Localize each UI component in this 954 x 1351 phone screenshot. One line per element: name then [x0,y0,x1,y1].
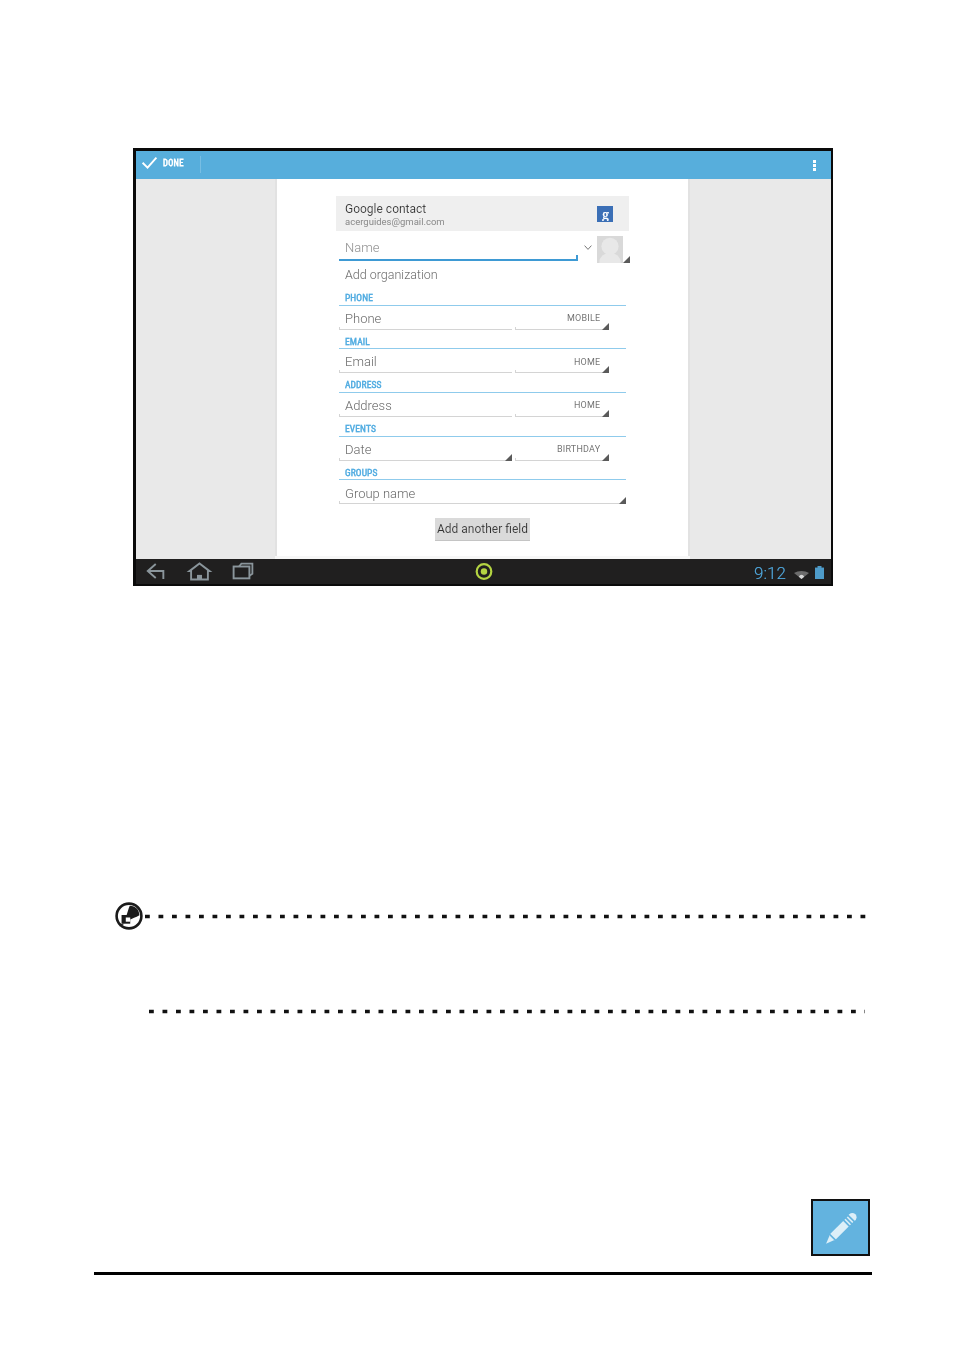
staticText: g [602,205,609,221]
staticText: GROUPS [345,467,378,478]
staticText: EVENTS [345,423,376,434]
staticText: EMAIL [345,336,370,347]
button[interactable] [339,439,512,460]
staticText: Email [345,354,377,369]
button[interactable] [339,308,512,329]
staticText: Date [345,442,372,457]
button[interactable]: Recent apps [228,559,258,583]
staticText: Address [345,398,392,413]
staticText: HOME [574,357,601,368]
staticText: Add another field [437,522,528,536]
staticText: Google contact [345,202,427,216]
staticText: MOBILE [567,313,601,324]
button[interactable]: More options [803,152,825,178]
other: Note [115,902,143,930]
button[interactable] [515,395,609,416]
staticText: DONE [163,158,184,168]
button[interactable] [515,308,609,329]
staticText: Phone [345,311,382,326]
staticText: 9:12 [754,563,786,579]
button[interactable] [339,483,626,504]
staticText: PHONE [345,292,373,303]
button[interactable] [339,352,512,373]
button[interactable] [339,395,512,416]
staticText: BIRTHDAY [557,444,601,455]
staticText: Name [345,240,380,255]
button[interactable] [515,439,609,460]
button[interactable] [515,352,609,373]
button[interactable]: Contact photo [597,236,623,263]
staticText: acerguides@gmail.com [345,216,445,227]
staticText: Add organization [345,267,438,282]
staticText: Group name [345,486,416,501]
button[interactable]: Back [141,559,171,583]
button[interactable]: Home [184,559,214,583]
button[interactable]: DONE [139,151,200,179]
staticText: HOME [574,400,601,411]
staticText: ADDRESS [345,379,382,390]
button[interactable]: Add another field [435,518,530,540]
button[interactable] [339,266,519,285]
button[interactable] [339,238,577,259]
button[interactable]: Edit [813,1201,868,1254]
button[interactable]: Google contact [336,196,629,231]
button[interactable]: Screenshot [471,559,497,584]
